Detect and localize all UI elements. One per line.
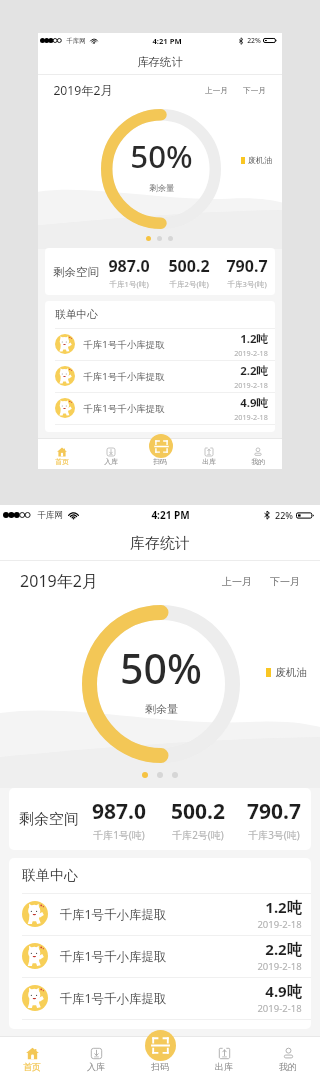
- staticText: 出库: [202, 457, 216, 466]
- button[interactable]: 出库: [184, 438, 233, 469]
- staticText: 入库: [87, 1061, 105, 1072]
- staticText: 4.9吨: [240, 395, 268, 411]
- button[interactable]: 剩余空间: [45, 248, 275, 295]
- staticText: 2019-2-18: [257, 918, 302, 931]
- staticText: 2019年2月: [53, 82, 113, 99]
- staticText: 千库1号(吨): [109, 279, 149, 289]
- staticText: 库存统计: [137, 55, 183, 69]
- staticText: 千库1号千小库提取: [83, 370, 165, 383]
- staticText: 扫码: [153, 457, 167, 466]
- button[interactable]: 扫码: [149, 434, 173, 458]
- staticText: 联单中心: [22, 867, 78, 885]
- staticText: 我的: [251, 457, 265, 466]
- staticText: 500.2: [171, 797, 225, 826]
- staticText: 2019-2-18: [234, 380, 268, 390]
- button[interactable]: 入库: [64, 1036, 128, 1076]
- staticText: 千库2号(吨): [172, 828, 224, 842]
- staticText: 2019-2-18: [234, 348, 268, 358]
- staticText: 1.2吨: [265, 897, 302, 917]
- staticText: 首页: [23, 1061, 41, 1072]
- staticText: 2019年2月: [20, 570, 98, 592]
- staticText: 出库: [215, 1061, 233, 1072]
- staticText: 下一月: [243, 86, 266, 96]
- staticText: 4.9吨: [265, 981, 302, 1001]
- staticText: 500.2: [168, 255, 210, 277]
- button[interactable]: 千库1号千小库提取: [45, 360, 275, 392]
- button[interactable]: 扫码: [128, 1036, 192, 1076]
- button[interactable]: 剩余空间: [9, 788, 311, 850]
- button[interactable]: 入库: [86, 438, 135, 469]
- staticText: 50%: [130, 135, 193, 178]
- staticText: 22%: [275, 509, 293, 521]
- staticText: 2.2吨: [265, 939, 302, 959]
- button[interactable]: 出库: [192, 1036, 256, 1076]
- staticText: 千库1号千小库提取: [83, 402, 165, 415]
- staticText: 剩余空间: [53, 265, 99, 279]
- staticText: 剩余量: [149, 183, 175, 194]
- button[interactable]: 千库1号千小库提取: [45, 328, 275, 360]
- staticText: 1.2吨: [240, 331, 268, 347]
- staticText: 987.0: [92, 797, 146, 826]
- staticText: 50%: [120, 640, 202, 696]
- button[interactable]: 千库1号千小库提取: [9, 935, 311, 977]
- button[interactable]: 千库1号千小库提取: [45, 392, 275, 424]
- button[interactable]: 扫码: [135, 438, 184, 469]
- staticText: 剩余量: [145, 702, 178, 716]
- button[interactable]: 扫码: [145, 1030, 176, 1061]
- staticText: 4:21 PM: [152, 36, 182, 46]
- staticText: 千库1号千小库提取: [59, 990, 167, 1007]
- staticText: 4:21 PM: [151, 508, 190, 522]
- staticText: 2.2吨: [240, 363, 268, 379]
- staticText: 下一月: [270, 575, 300, 588]
- staticText: 千库2号(吨): [169, 279, 209, 289]
- staticText: 千库3号(吨): [227, 279, 267, 289]
- staticText: 废机油: [275, 666, 307, 679]
- button[interactable]: 我的: [233, 438, 282, 469]
- button[interactable]: 千库1号千小库提取: [9, 893, 311, 935]
- staticText: 联单中心: [55, 308, 98, 321]
- button[interactable]: 首页: [38, 438, 86, 469]
- staticText: 987.0: [108, 255, 150, 277]
- button[interactable]: 下一月: [268, 571, 302, 592]
- staticText: 千库1号千小库提取: [59, 906, 167, 923]
- staticText: 2019-2-18: [257, 1002, 302, 1015]
- staticText: 千库网: [37, 510, 63, 521]
- staticText: 上一月: [222, 575, 252, 588]
- staticText: 库存统计: [130, 534, 190, 553]
- staticText: 千库3号(吨): [248, 828, 300, 842]
- button[interactable]: 上一月: [203, 83, 230, 99]
- staticText: 千库1号千小库提取: [83, 338, 165, 351]
- staticText: 千库1号千小库提取: [59, 948, 167, 965]
- staticText: 剩余空间: [19, 810, 79, 829]
- staticText: 790.7: [226, 255, 268, 277]
- button[interactable]: 首页: [0, 1036, 64, 1076]
- staticText: 扫码: [151, 1061, 169, 1072]
- staticText: 入库: [104, 457, 118, 466]
- button[interactable]: 下一月: [241, 83, 268, 99]
- button[interactable]: 千库1号千小库提取: [9, 977, 311, 1019]
- staticText: 2019-2-18: [257, 960, 302, 973]
- button[interactable]: 上一月: [220, 571, 254, 592]
- staticText: 22%: [247, 36, 261, 45]
- staticText: 2019-2-18: [234, 412, 268, 422]
- staticText: 千库网: [66, 37, 86, 45]
- staticText: 首页: [55, 457, 69, 466]
- button[interactable]: 我的: [256, 1036, 320, 1076]
- staticText: 上一月: [205, 86, 228, 96]
- staticText: 废机油: [248, 155, 272, 165]
- staticText: 790.7: [247, 797, 301, 826]
- staticText: 我的: [279, 1061, 297, 1072]
- staticText: 千库1号(吨): [93, 828, 145, 842]
